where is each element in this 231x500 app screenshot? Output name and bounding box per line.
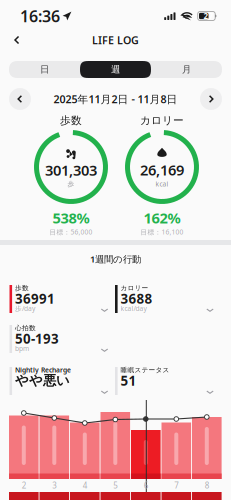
staticText: kcal — [155, 180, 168, 188]
staticText: 心拍数 — [15, 324, 36, 332]
button[interactable]: 月 — [151, 61, 222, 78]
staticText: 3 — [52, 480, 57, 491]
staticText: 50-193 — [15, 330, 59, 347]
staticText: 27 — [204, 11, 214, 21]
staticText: 51 — [121, 372, 137, 389]
staticText: 301,303 — [45, 160, 97, 180]
button[interactable]: 心拍数 — [9, 324, 113, 360]
staticText: 8 — [205, 480, 210, 491]
staticText: 2 — [22, 480, 27, 491]
staticText: LIFE LOG — [92, 33, 139, 47]
staticText: やや悪い — [15, 372, 70, 389]
staticText: 2025年11月2日 - 11月8日 — [53, 92, 177, 106]
staticText: 5 — [113, 480, 118, 491]
staticText: 1週間の行動 — [90, 253, 141, 265]
staticText: 3688 — [121, 290, 153, 307]
button[interactable]: Next week — [200, 88, 222, 110]
button[interactable]: Nightly Recharge — [9, 366, 113, 402]
staticText: 歩数 — [60, 114, 82, 127]
staticText: 6 — [144, 480, 149, 491]
button[interactable]: 睡眠ステータス — [115, 366, 219, 402]
button[interactable]: Back — [4, 29, 30, 51]
staticText: 歩 — [67, 180, 74, 188]
button[interactable]: Previous week — [9, 88, 31, 110]
staticText: 538% — [52, 208, 89, 227]
staticText: 日 — [40, 64, 49, 75]
staticText: 目標：16,100 — [140, 227, 183, 236]
staticText: カロリー — [121, 284, 149, 292]
staticText: 4 — [83, 480, 88, 491]
staticText: カロリー — [140, 114, 184, 127]
button[interactable]: 歩数 — [9, 284, 113, 320]
staticText: 睡眠ステータス — [121, 366, 170, 374]
staticText: Nightly Recharge — [15, 366, 71, 374]
staticText: 16:36 — [20, 5, 60, 27]
staticText: 目標：56,000 — [49, 227, 92, 236]
staticText: kcal/day — [121, 304, 147, 313]
staticText: 7 — [174, 480, 179, 491]
staticText: 歩数 — [15, 284, 29, 292]
button[interactable]: カロリー — [115, 284, 219, 320]
staticText: 歩/day — [15, 304, 35, 313]
staticText: 26,169 — [140, 160, 184, 180]
button[interactable]: 日 — [9, 61, 80, 78]
staticText: 週 — [111, 64, 120, 75]
staticText: 36991 — [15, 290, 55, 307]
staticText: 162% — [143, 208, 180, 227]
staticText: bpm — [15, 344, 29, 353]
staticText: 月 — [182, 64, 191, 75]
button[interactable]: 週 — [80, 61, 151, 78]
